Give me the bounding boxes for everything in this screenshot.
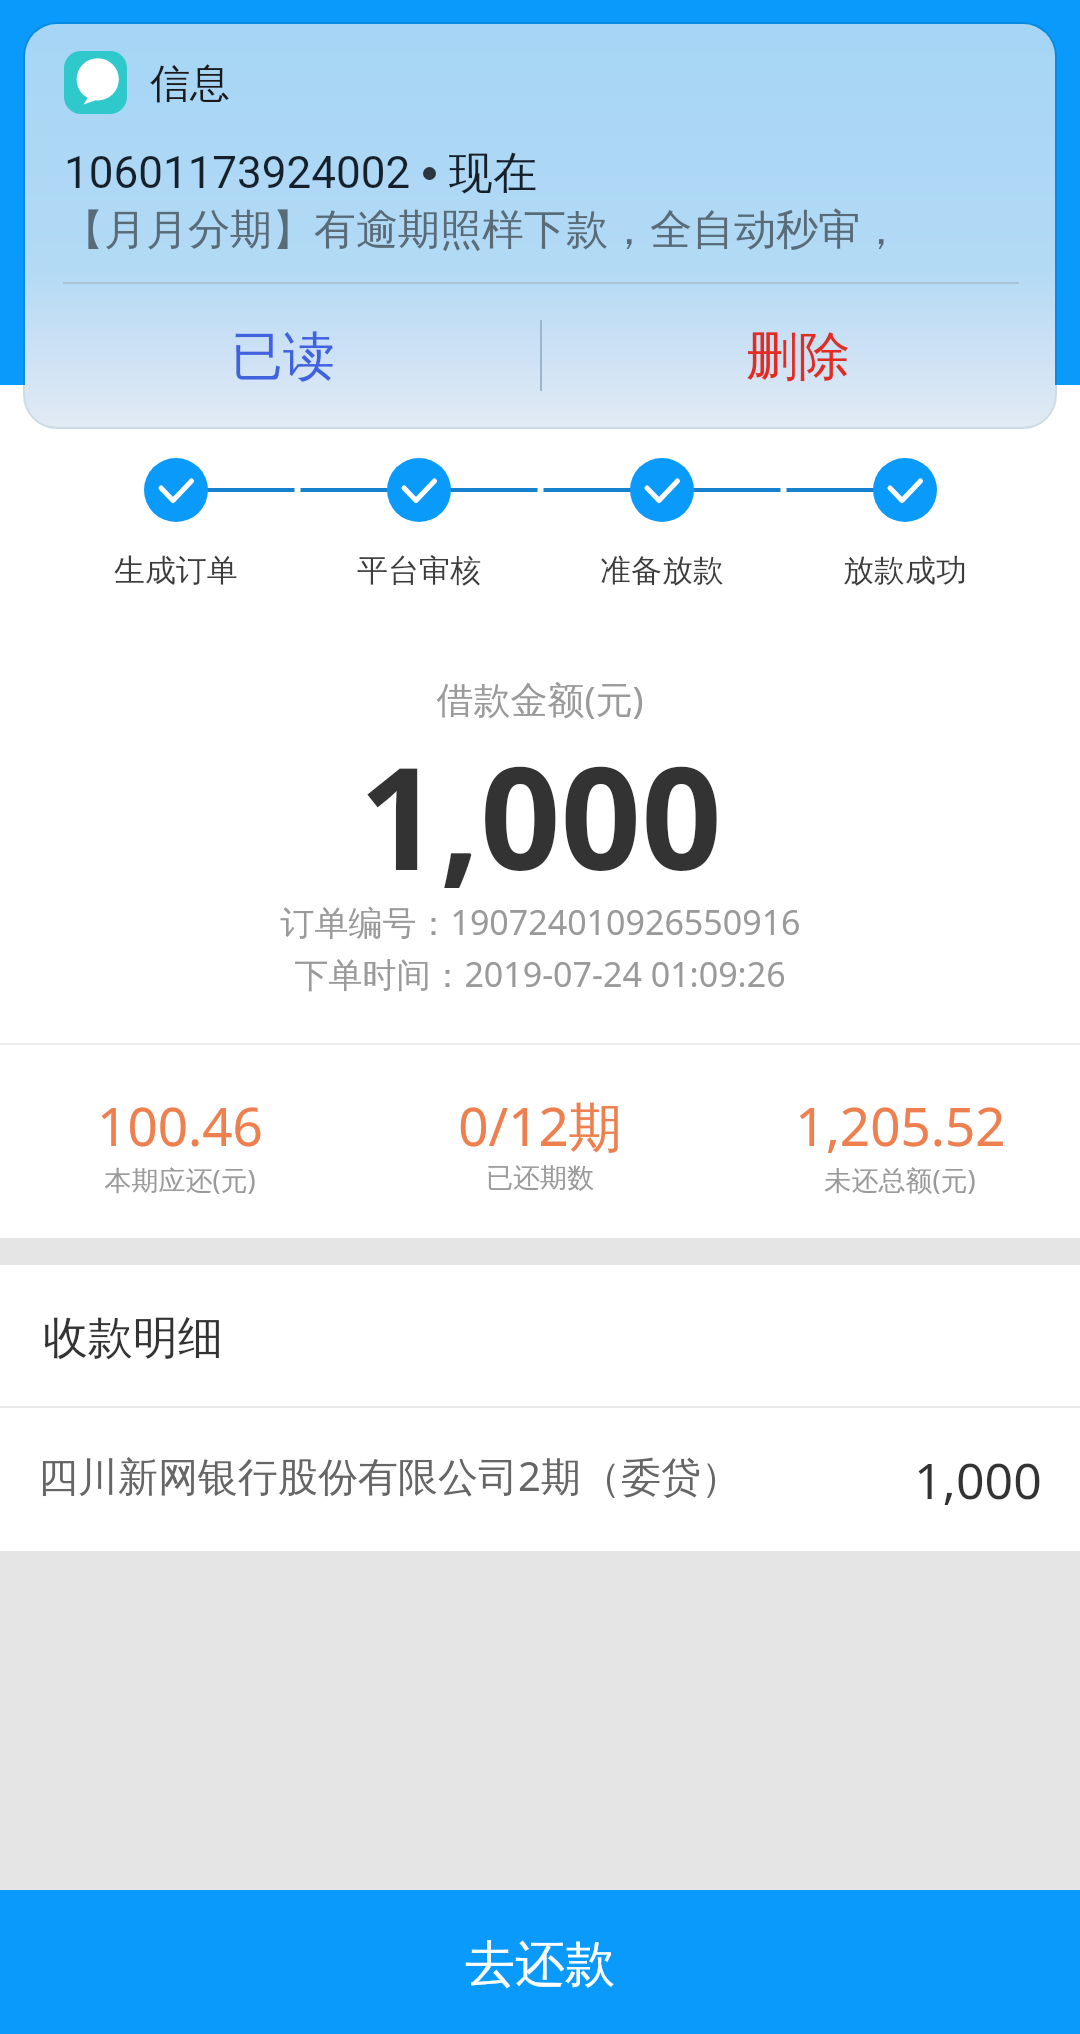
staticText: 准备放款: [600, 551, 724, 590]
staticText: 【月月分期】有逾期照样下款，全自动秒审，: [62, 204, 902, 257]
staticText: 已读: [231, 324, 335, 390]
staticText: 100.46: [97, 1089, 263, 1161]
staticText: 已还期数: [486, 1161, 594, 1195]
staticText: 10601173924002: [64, 147, 411, 199]
staticText: 现在: [449, 146, 537, 200]
staticText: 放款成功: [843, 551, 967, 590]
button[interactable]: 100.46: [0, 1045, 360, 1238]
staticText: 未还总额(元): [824, 1161, 976, 1198]
button[interactable]: 信息 Messages app icon: [25, 24, 1055, 427]
staticText: 删除: [746, 324, 850, 390]
staticText: 订单编号：190724010926550916: [280, 899, 801, 945]
staticText: 生成订单: [114, 551, 238, 590]
button[interactable]: 0/12期: [360, 1045, 720, 1238]
button[interactable]: 去还款: [0, 1890, 1080, 2034]
staticText: 收款明细: [43, 1310, 223, 1367]
staticText: 去还款: [465, 1933, 615, 1996]
staticText: 信息: [150, 58, 230, 108]
staticText: 下单时间：2019-07-24 01:09:26: [294, 951, 786, 997]
staticText: 平台审核: [357, 551, 481, 590]
button[interactable]: 1,205.52: [720, 1045, 1080, 1238]
staticText: 借款金额(元): [436, 673, 644, 724]
staticText: 1,000: [359, 719, 722, 911]
staticText: 1,000: [914, 1446, 1042, 1514]
button[interactable]: 删除: [540, 287, 1055, 427]
staticText: 四川新网银行股份有限公司2期（委贷）: [38, 1448, 741, 1503]
button[interactable]: 四川新网银行股份有限公司2期（委贷）: [0, 1408, 1080, 1551]
staticText: 1,205.52: [795, 1089, 1006, 1161]
other: 信息 Messages app icon: [64, 51, 127, 114]
button[interactable]: 已读: [25, 287, 540, 427]
staticText: 0/12期: [458, 1089, 622, 1161]
staticText: 本期应还(元): [104, 1161, 256, 1198]
